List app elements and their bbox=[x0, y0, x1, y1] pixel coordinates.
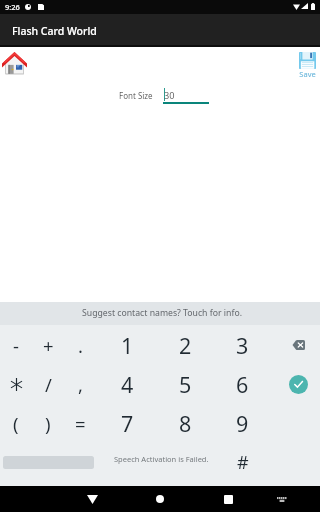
button[interactable]: 3 bbox=[214, 328, 270, 362]
button[interactable]: Home bbox=[144, 486, 176, 512]
button[interactable]: 6 bbox=[214, 367, 270, 401]
button[interactable] bbox=[1, 367, 31, 401]
button[interactable]: 7 bbox=[99, 406, 155, 440]
staticText: # bbox=[237, 450, 249, 475]
staticText: Save bbox=[298, 69, 317, 79]
staticText: ( bbox=[13, 411, 19, 436]
button[interactable]: # bbox=[229, 448, 257, 476]
button[interactable]: 8 bbox=[157, 406, 213, 440]
staticText: ) bbox=[45, 411, 51, 436]
button[interactable]: Save bbox=[296, 49, 318, 77]
staticText: Speech Activation is Failed. bbox=[114, 454, 209, 464]
staticText: - bbox=[13, 333, 19, 358]
staticText: Font Size bbox=[119, 90, 153, 101]
staticText: Suggest contact names? Touch for info. bbox=[82, 307, 243, 319]
staticText: 8 bbox=[179, 409, 192, 438]
staticText: 2 bbox=[179, 331, 192, 360]
staticText: 3 bbox=[236, 331, 249, 360]
button[interactable]: . bbox=[65, 328, 95, 362]
button[interactable]: - bbox=[1, 328, 31, 362]
staticText: / bbox=[45, 372, 52, 397]
staticText: . bbox=[78, 333, 83, 358]
button[interactable]: Enter bbox=[270, 367, 320, 401]
staticText: 1 bbox=[121, 331, 134, 360]
button[interactable]: ) bbox=[33, 406, 63, 440]
button[interactable]: 9 bbox=[214, 406, 270, 440]
staticText: Flash Card World bbox=[12, 24, 97, 38]
staticText: + bbox=[43, 333, 54, 358]
button[interactable]: 5 bbox=[157, 367, 213, 401]
button[interactable]: Delete bbox=[270, 328, 320, 362]
button[interactable]: 1 bbox=[99, 328, 155, 362]
staticText: 7 bbox=[121, 409, 134, 438]
staticText: 9 bbox=[236, 409, 249, 438]
staticText: 4 bbox=[121, 370, 134, 399]
button[interactable]: Recents bbox=[212, 486, 244, 512]
button[interactable]: + bbox=[33, 328, 63, 362]
staticText: 30 bbox=[164, 89, 175, 102]
button[interactable]: Switch keyboard bbox=[266, 486, 298, 512]
button[interactable]: = bbox=[65, 406, 95, 440]
button[interactable]: Back bbox=[76, 486, 108, 512]
button[interactable]: ( bbox=[1, 406, 31, 440]
staticText: 5 bbox=[179, 370, 192, 399]
staticText: , bbox=[78, 372, 83, 397]
staticText: = bbox=[75, 411, 86, 436]
button[interactable]: , bbox=[65, 367, 95, 401]
staticText: 9:26 bbox=[5, 2, 20, 12]
button[interactable]: 4 bbox=[99, 367, 155, 401]
button[interactable]: Home bbox=[0, 49, 28, 77]
button[interactable]: Suggest contact names? Touch for info. bbox=[0, 302, 320, 325]
button[interactable]: / bbox=[33, 367, 63, 401]
staticText: 6 bbox=[236, 370, 249, 399]
button[interactable]: 2 bbox=[157, 328, 213, 362]
